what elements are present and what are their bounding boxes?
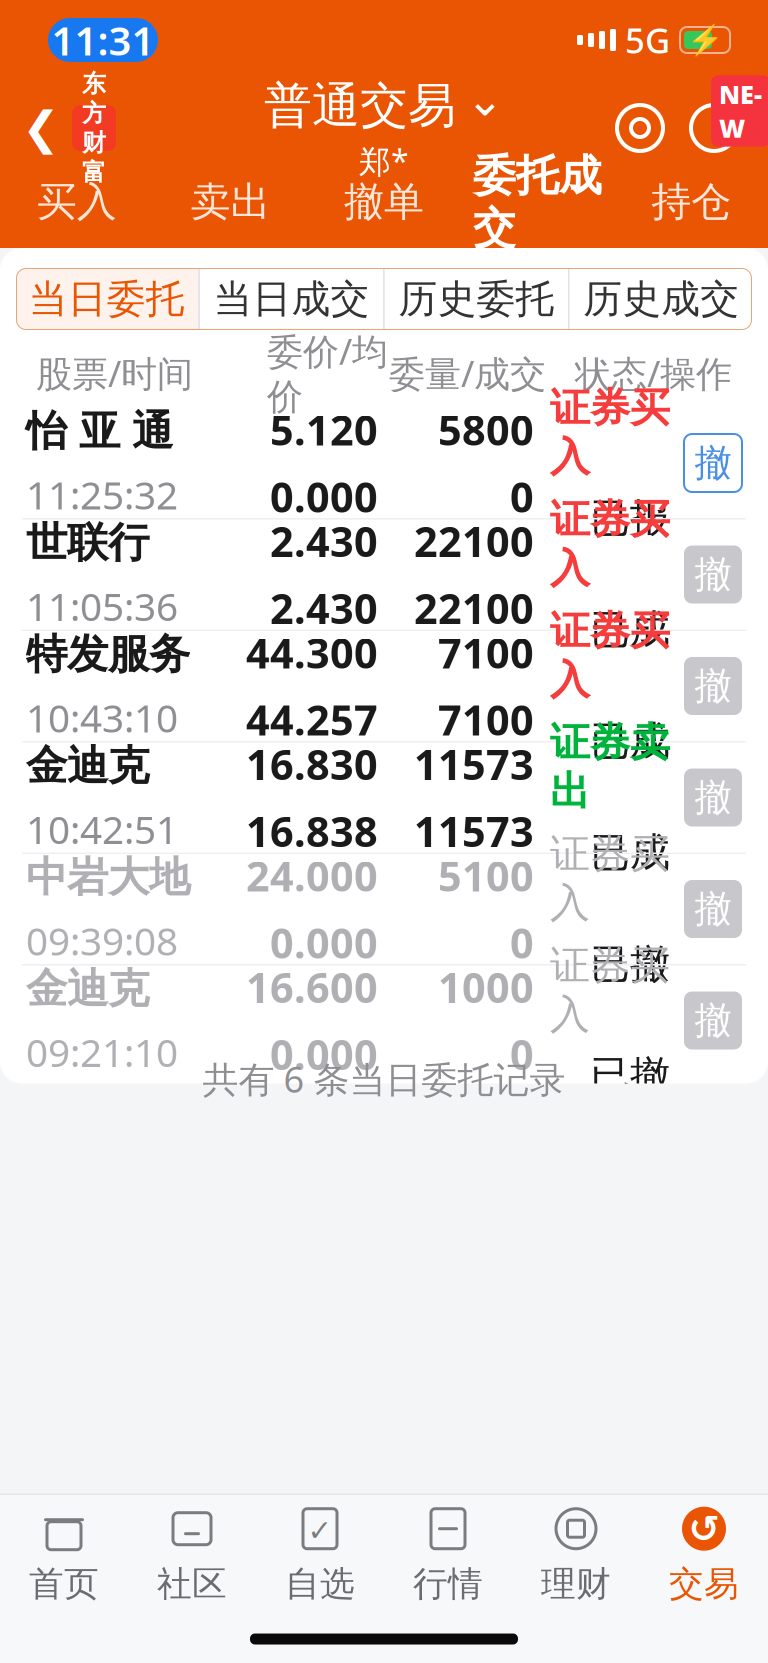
staticText: 16.830	[246, 737, 378, 791]
staticText: ↺	[688, 1507, 719, 1550]
staticText: 撤	[694, 886, 731, 932]
staticText: 0	[510, 469, 534, 524]
staticText: 卖出	[190, 177, 270, 226]
button[interactable]: Cancel order	[684, 991, 742, 1049]
staticText: 11:25:32	[26, 469, 178, 520]
button[interactable]: 怡 亚 通	[0, 408, 768, 518]
button[interactable]: Cancel order	[684, 545, 742, 603]
staticText: 持仓	[651, 177, 731, 226]
staticText: 撤	[694, 552, 731, 597]
staticText: 撤	[694, 663, 731, 709]
staticText: 证券买入	[550, 383, 670, 482]
staticText: 中岩大地	[26, 852, 190, 903]
staticText: 已成	[590, 717, 670, 766]
staticText: ❮	[22, 102, 60, 154]
staticText: 5800	[438, 402, 534, 457]
staticText: 首页	[29, 1563, 99, 1605]
button[interactable]: 历史委托	[385, 268, 568, 330]
staticText: 7100	[438, 625, 534, 680]
staticText: 状态/操作	[575, 349, 732, 397]
button[interactable]: ↺	[640, 1495, 768, 1615]
button[interactable]: 社区	[128, 1495, 256, 1615]
staticText: 买入	[37, 177, 117, 226]
staticText: 44.257	[246, 692, 378, 747]
staticText: 撤	[694, 998, 731, 1043]
staticText: 5.120	[270, 402, 378, 457]
button[interactable]: Cancel order	[684, 880, 742, 938]
staticText: 16.600	[246, 960, 378, 1014]
staticText: 11:05:36	[26, 580, 178, 631]
staticText: 22100	[414, 580, 534, 635]
staticText: 已报	[590, 494, 670, 543]
staticText: 证券买入	[550, 606, 670, 705]
staticText: 44.300	[246, 625, 378, 680]
button[interactable]: Settings	[612, 100, 668, 156]
staticText: 历史委托	[398, 275, 554, 323]
staticText: 5100	[438, 848, 534, 903]
staticText: 共有 6 条当日委托记录	[202, 1055, 565, 1103]
button[interactable]: 首页	[0, 1495, 128, 1615]
staticText: 7100	[438, 692, 534, 747]
staticText: 已成	[590, 605, 670, 654]
staticText: 11573	[414, 803, 534, 858]
staticText: 撤	[694, 440, 731, 486]
staticText: 11:31	[51, 13, 154, 66]
staticText: 0.000	[270, 915, 378, 970]
button[interactable]: 金迪克	[0, 742, 768, 852]
staticText: 09:39:08	[26, 915, 178, 966]
button[interactable]: Back	[0, 92, 116, 164]
staticText: 郑*	[359, 139, 409, 182]
staticText: 0	[510, 1026, 534, 1081]
button[interactable]: 历史成交	[570, 268, 753, 330]
button[interactable]: 卖出	[154, 176, 307, 242]
staticText: 委托成交	[473, 150, 602, 254]
staticText: 0	[510, 915, 534, 970]
staticText: 已成	[590, 828, 670, 877]
staticText: ✓	[307, 1514, 332, 1547]
button[interactable]: 持仓	[614, 176, 768, 242]
staticText: 当日成交	[214, 275, 370, 323]
staticText: 自选	[285, 1563, 355, 1605]
staticText: 股票/时间	[36, 349, 193, 397]
staticText: 2.430	[270, 580, 378, 635]
staticText: ⚡	[686, 23, 723, 57]
button[interactable]: 特发服务	[0, 631, 768, 741]
staticText: 行情	[413, 1563, 483, 1605]
staticText: 证券卖出	[550, 718, 670, 816]
button[interactable]: 买入	[0, 176, 154, 242]
button[interactable]: 理财	[512, 1495, 640, 1615]
button[interactable]: Cancel order	[684, 768, 742, 826]
button[interactable]: 金迪克	[0, 965, 768, 1075]
staticText: 财富	[82, 128, 106, 187]
staticText: 普通交易	[264, 76, 456, 135]
staticText: 特发服务	[26, 629, 190, 680]
staticText: 证券买入	[550, 941, 670, 1039]
staticText: 2.430	[270, 514, 378, 568]
button[interactable]: 当日委托	[15, 268, 198, 330]
button[interactable]: Cancel order	[684, 434, 742, 492]
button[interactable]: 中岩大地	[0, 854, 768, 964]
staticText: ⌄	[466, 74, 504, 125]
staticText: 怡 亚 通	[26, 406, 173, 457]
button[interactable]: 行情	[384, 1495, 512, 1615]
button[interactable]: 委托成交	[461, 176, 614, 242]
staticText: 交易	[669, 1563, 739, 1605]
staticText: 10:43:10	[26, 692, 178, 743]
button[interactable]: 世联行	[0, 519, 768, 629]
staticText: 理财	[541, 1563, 611, 1605]
button[interactable]: ✓	[256, 1495, 384, 1615]
staticText: 5G	[625, 17, 670, 63]
staticText: 当日委托	[29, 275, 185, 323]
button[interactable]: Refresh	[686, 100, 742, 156]
staticText: 委量/成交	[389, 349, 546, 397]
staticText: 11573	[414, 737, 534, 791]
staticText: 证券买入	[550, 495, 670, 593]
staticText: 委价/均价	[267, 327, 388, 419]
staticText: 09:21:10	[26, 1026, 178, 1077]
staticText: 证券买入	[550, 829, 670, 928]
button[interactable]: 当日成交	[200, 268, 383, 330]
button[interactable]: 撤单	[307, 176, 461, 242]
button[interactable]: Cancel order	[684, 657, 742, 715]
staticText: 16.838	[246, 803, 378, 858]
staticText: 历史成交	[583, 275, 739, 323]
